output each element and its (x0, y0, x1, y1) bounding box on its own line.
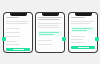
button[interactable] (6, 43, 30, 46)
button[interactable]: Help (62, 37, 66, 41)
button[interactable]: Help (2, 37, 6, 41)
button[interactable] (38, 43, 62, 46)
button[interactable]: Submit (6, 48, 30, 51)
button[interactable] (6, 27, 30, 30)
button[interactable] (71, 35, 95, 38)
button[interactable] (38, 39, 62, 42)
button[interactable] (71, 41, 95, 44)
button[interactable]: Help (95, 37, 99, 41)
button[interactable] (6, 35, 30, 38)
button[interactable]: Submit (3, 12, 33, 53)
button[interactable]: Submit (71, 46, 95, 49)
button[interactable]: Submit (68, 12, 98, 53)
button[interactable] (35, 12, 65, 53)
button[interactable] (6, 31, 30, 34)
